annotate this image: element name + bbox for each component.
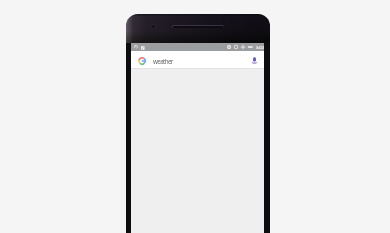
button[interactable]: weather: [131, 51, 264, 68]
staticText: N: [141, 45, 145, 51]
staticText: weather: [153, 57, 173, 65]
button[interactable]: Voice search: [251, 57, 258, 64]
staticText: 3:02: [256, 45, 264, 50]
